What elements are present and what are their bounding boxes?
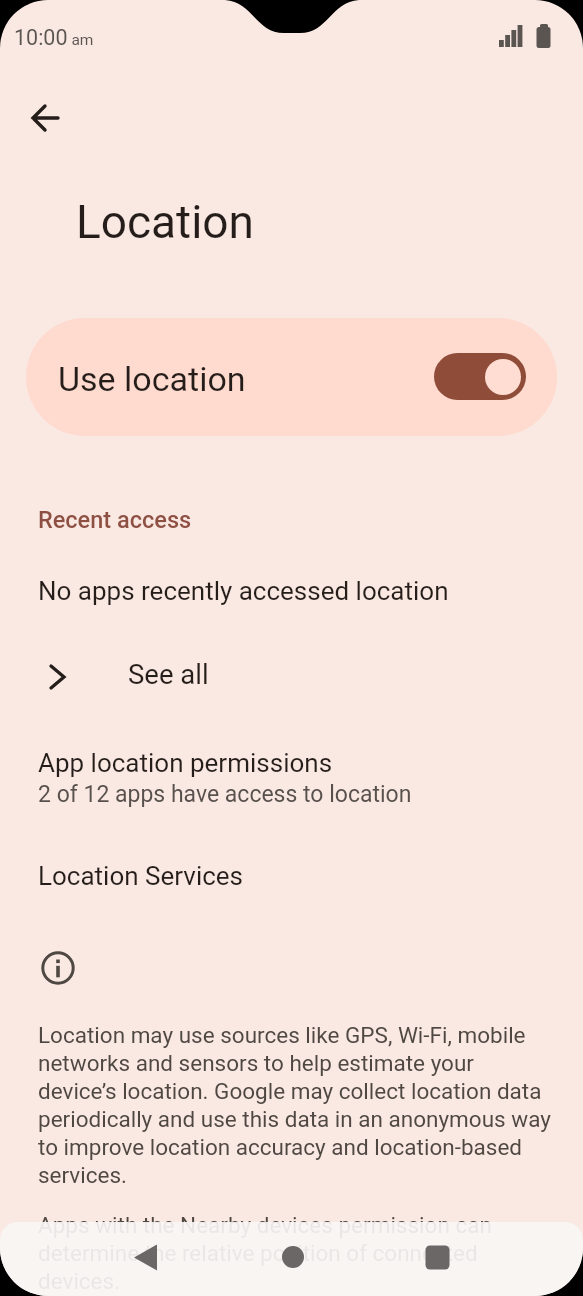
button[interactable] bbox=[24, 97, 66, 139]
staticText: Location Services bbox=[38, 861, 244, 891]
button[interactable]: Location Services bbox=[0, 850, 583, 914]
button[interactable] bbox=[403, 1226, 471, 1288]
button[interactable] bbox=[112, 1226, 180, 1288]
staticText: 2 of 12 apps have access to location bbox=[38, 781, 412, 808]
staticText: Location bbox=[76, 195, 254, 249]
staticText: Recent access bbox=[38, 506, 192, 534]
button[interactable] bbox=[259, 1226, 327, 1288]
staticText: See all bbox=[128, 658, 209, 690]
staticText: App location permissions bbox=[38, 748, 333, 778]
staticText: No apps recently accessed location bbox=[38, 576, 449, 606]
staticText: Use location bbox=[58, 359, 246, 399]
staticText: Location may use sources like GPS, Wi-Fi… bbox=[38, 1022, 578, 1188]
button[interactable]: Use location bbox=[26, 318, 557, 436]
staticText: Apps with the Nearby devices permission … bbox=[38, 1212, 578, 1294]
button[interactable]: See all bbox=[0, 640, 583, 712]
button[interactable]: App location permissions bbox=[0, 735, 583, 821]
staticText: 10:00 am bbox=[14, 25, 94, 50]
